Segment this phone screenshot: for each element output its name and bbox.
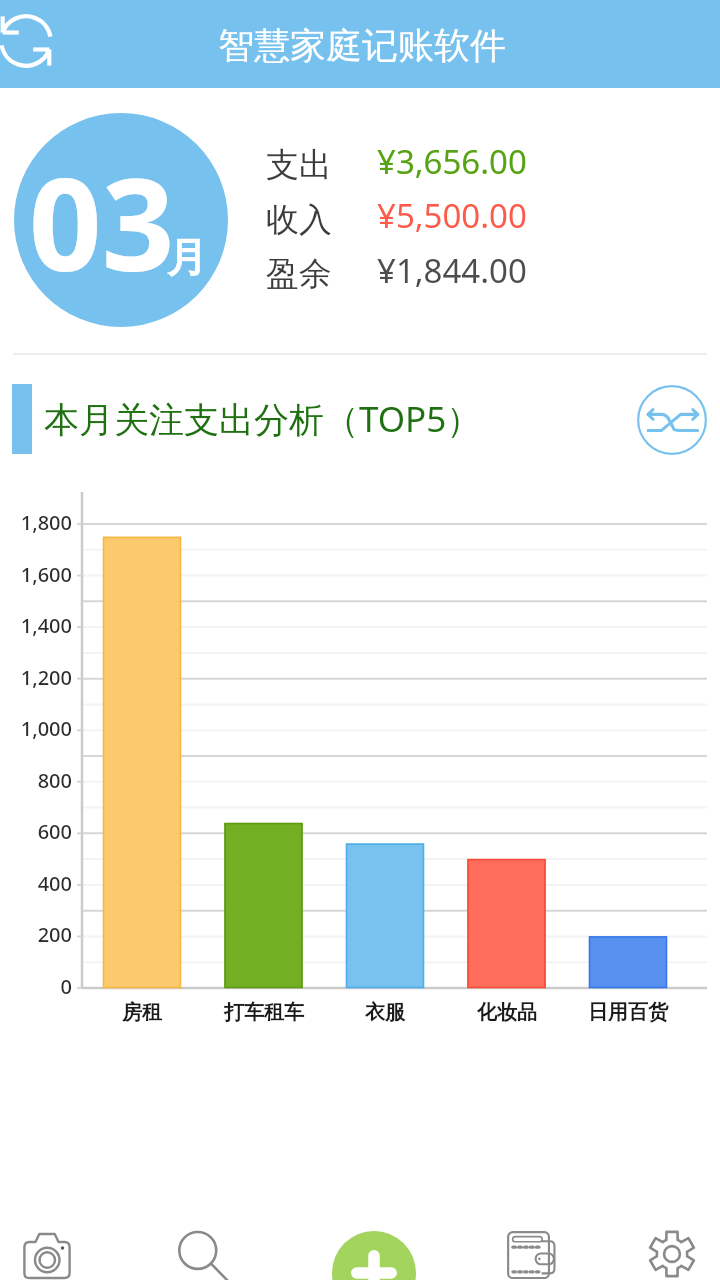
staticText: 衣服 <box>365 1000 405 1025</box>
button[interactable]: 支出 <box>260 136 540 184</box>
staticText: 800 <box>37 767 72 794</box>
staticText: 1,600 <box>20 561 72 588</box>
staticText: 本月关注支出分析（TOP5） <box>44 395 482 443</box>
button[interactable]: Camera <box>0 1219 97 1280</box>
staticText: 600 <box>37 818 72 845</box>
button[interactable]: Wallet <box>481 1218 581 1280</box>
button[interactable]: Search <box>154 1223 254 1280</box>
staticText: 1,800 <box>20 509 72 536</box>
button[interactable]: 盈余 <box>260 245 540 293</box>
staticText: 收入 <box>266 199 332 241</box>
staticText: 房租 <box>122 1000 162 1025</box>
staticText: ¥1,844.00 <box>377 248 527 293</box>
staticText: 打车租车 <box>224 1000 304 1025</box>
staticText: 支出 <box>266 144 332 186</box>
button[interactable]: 收入 <box>260 191 540 239</box>
staticText: 1,200 <box>20 664 72 691</box>
staticText: 盈余 <box>266 253 332 295</box>
button[interactable]: 03 <box>14 113 228 327</box>
button[interactable]: Settings <box>622 1219 720 1280</box>
staticText: 智慧家庭记账软件 <box>218 23 506 68</box>
button[interactable]: Switch chart <box>636 384 708 456</box>
staticText: 1,400 <box>20 612 72 639</box>
staticText: 1,000 <box>20 715 72 742</box>
staticText: 月 <box>167 232 207 282</box>
staticText: ¥5,500.00 <box>377 193 527 238</box>
staticText: 03 <box>29 135 175 308</box>
staticText: 0 <box>60 973 72 1000</box>
staticText: 400 <box>37 870 72 897</box>
staticText: ¥3,656.00 <box>377 139 527 184</box>
staticText: 化妆品 <box>477 1000 537 1025</box>
button[interactable]: Sync <box>0 10 57 72</box>
staticText: 200 <box>37 921 72 948</box>
button[interactable]: Add record <box>332 1231 416 1280</box>
staticText: 日用百货 <box>588 1000 668 1025</box>
